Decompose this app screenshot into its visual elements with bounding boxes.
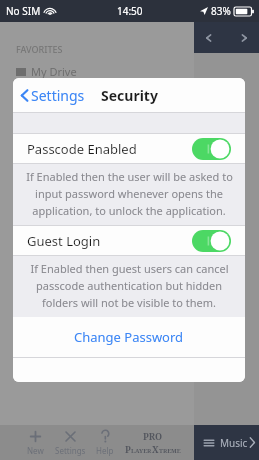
button[interactable]: Back	[202, 31, 216, 45]
staticText: PRO	[143, 430, 163, 442]
staticText: P	[125, 443, 131, 455]
staticText: Settings	[55, 445, 86, 456]
staticText: folders will not be visible to them.	[42, 295, 216, 310]
staticText: Change Password	[74, 328, 184, 346]
button[interactable]: Passcode Enabled	[13, 133, 245, 164]
button[interactable]: Change Password	[13, 317, 245, 357]
staticText: If Enabled then the user will be asked t…	[26, 169, 233, 184]
staticText: X	[152, 443, 159, 455]
button[interactable]: Help	[94, 429, 116, 456]
staticText: If Enabled then guest users can cancel	[30, 261, 229, 276]
staticText: Passcode Enabled	[27, 140, 137, 158]
staticText: Music	[220, 436, 248, 450]
staticText: 14:50	[117, 4, 143, 18]
staticText: application, to unlock the application.	[32, 203, 226, 218]
staticText: My Drive	[31, 64, 77, 79]
staticText: Guest Login	[27, 232, 101, 250]
staticText: input password whenever opens the	[35, 186, 223, 201]
staticText: FAVORITES	[16, 43, 63, 55]
button[interactable]: Forward	[237, 31, 251, 45]
button[interactable]: Menu	[203, 437, 215, 449]
staticText: New	[27, 445, 44, 456]
staticText: No SIM	[6, 4, 41, 18]
staticText: Help	[96, 445, 114, 456]
staticText: LAYER	[131, 447, 152, 455]
button[interactable]: Settings	[20, 86, 85, 105]
button[interactable]: Passcode Enabled toggle, on	[192, 138, 231, 160]
button[interactable]: Music	[220, 435, 257, 450]
button[interactable]: New	[25, 429, 46, 456]
staticText: TREME	[159, 447, 181, 455]
staticText: Settings	[31, 86, 85, 105]
button[interactable]: Settings	[53, 429, 88, 456]
staticText: Security	[101, 86, 158, 105]
button[interactable]: PRO	[123, 430, 183, 455]
button[interactable]: Guest Login toggle, on	[192, 230, 231, 252]
button[interactable]: Guest Login	[13, 225, 245, 256]
staticText: passcode authentication but hidden	[36, 278, 222, 293]
staticText: 83%	[211, 4, 231, 18]
